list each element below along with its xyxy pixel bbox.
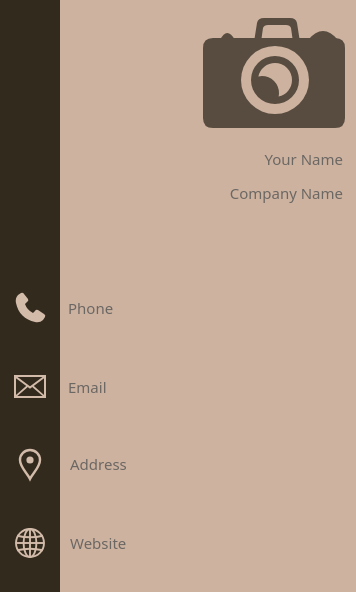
button[interactable]: Email — [0, 365, 356, 409]
button[interactable]: Your Name — [150, 148, 343, 170]
staticText: Email — [68, 377, 107, 397]
button[interactable]: Company Name — [150, 182, 343, 204]
button[interactable]: Address — [0, 442, 356, 486]
staticText: Company Name — [229, 183, 343, 203]
button[interactable]: Phone — [0, 286, 356, 330]
staticText: Phone — [68, 298, 114, 318]
button[interactable]: Logo — [198, 14, 350, 132]
staticText: Address — [70, 454, 127, 474]
staticText: Your Name — [264, 149, 343, 169]
button[interactable]: Website — [0, 521, 356, 565]
staticText: Website — [70, 533, 127, 553]
